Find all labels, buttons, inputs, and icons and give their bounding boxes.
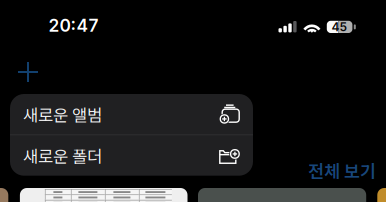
staticText: 전체 보기 <box>308 158 376 183</box>
button[interactable]: 새로운 앨범 <box>10 94 253 134</box>
staticText: 새로운 폴더 <box>23 143 102 167</box>
staticText: 45 <box>332 20 348 34</box>
staticText: 새로운 앨범 <box>23 102 102 126</box>
button[interactable]: 전체 보기 <box>304 155 380 186</box>
staticText: 20:47 <box>48 15 98 36</box>
button[interactable]: 새로운 폴더 <box>10 135 253 176</box>
button[interactable]: Add <box>7 51 49 93</box>
